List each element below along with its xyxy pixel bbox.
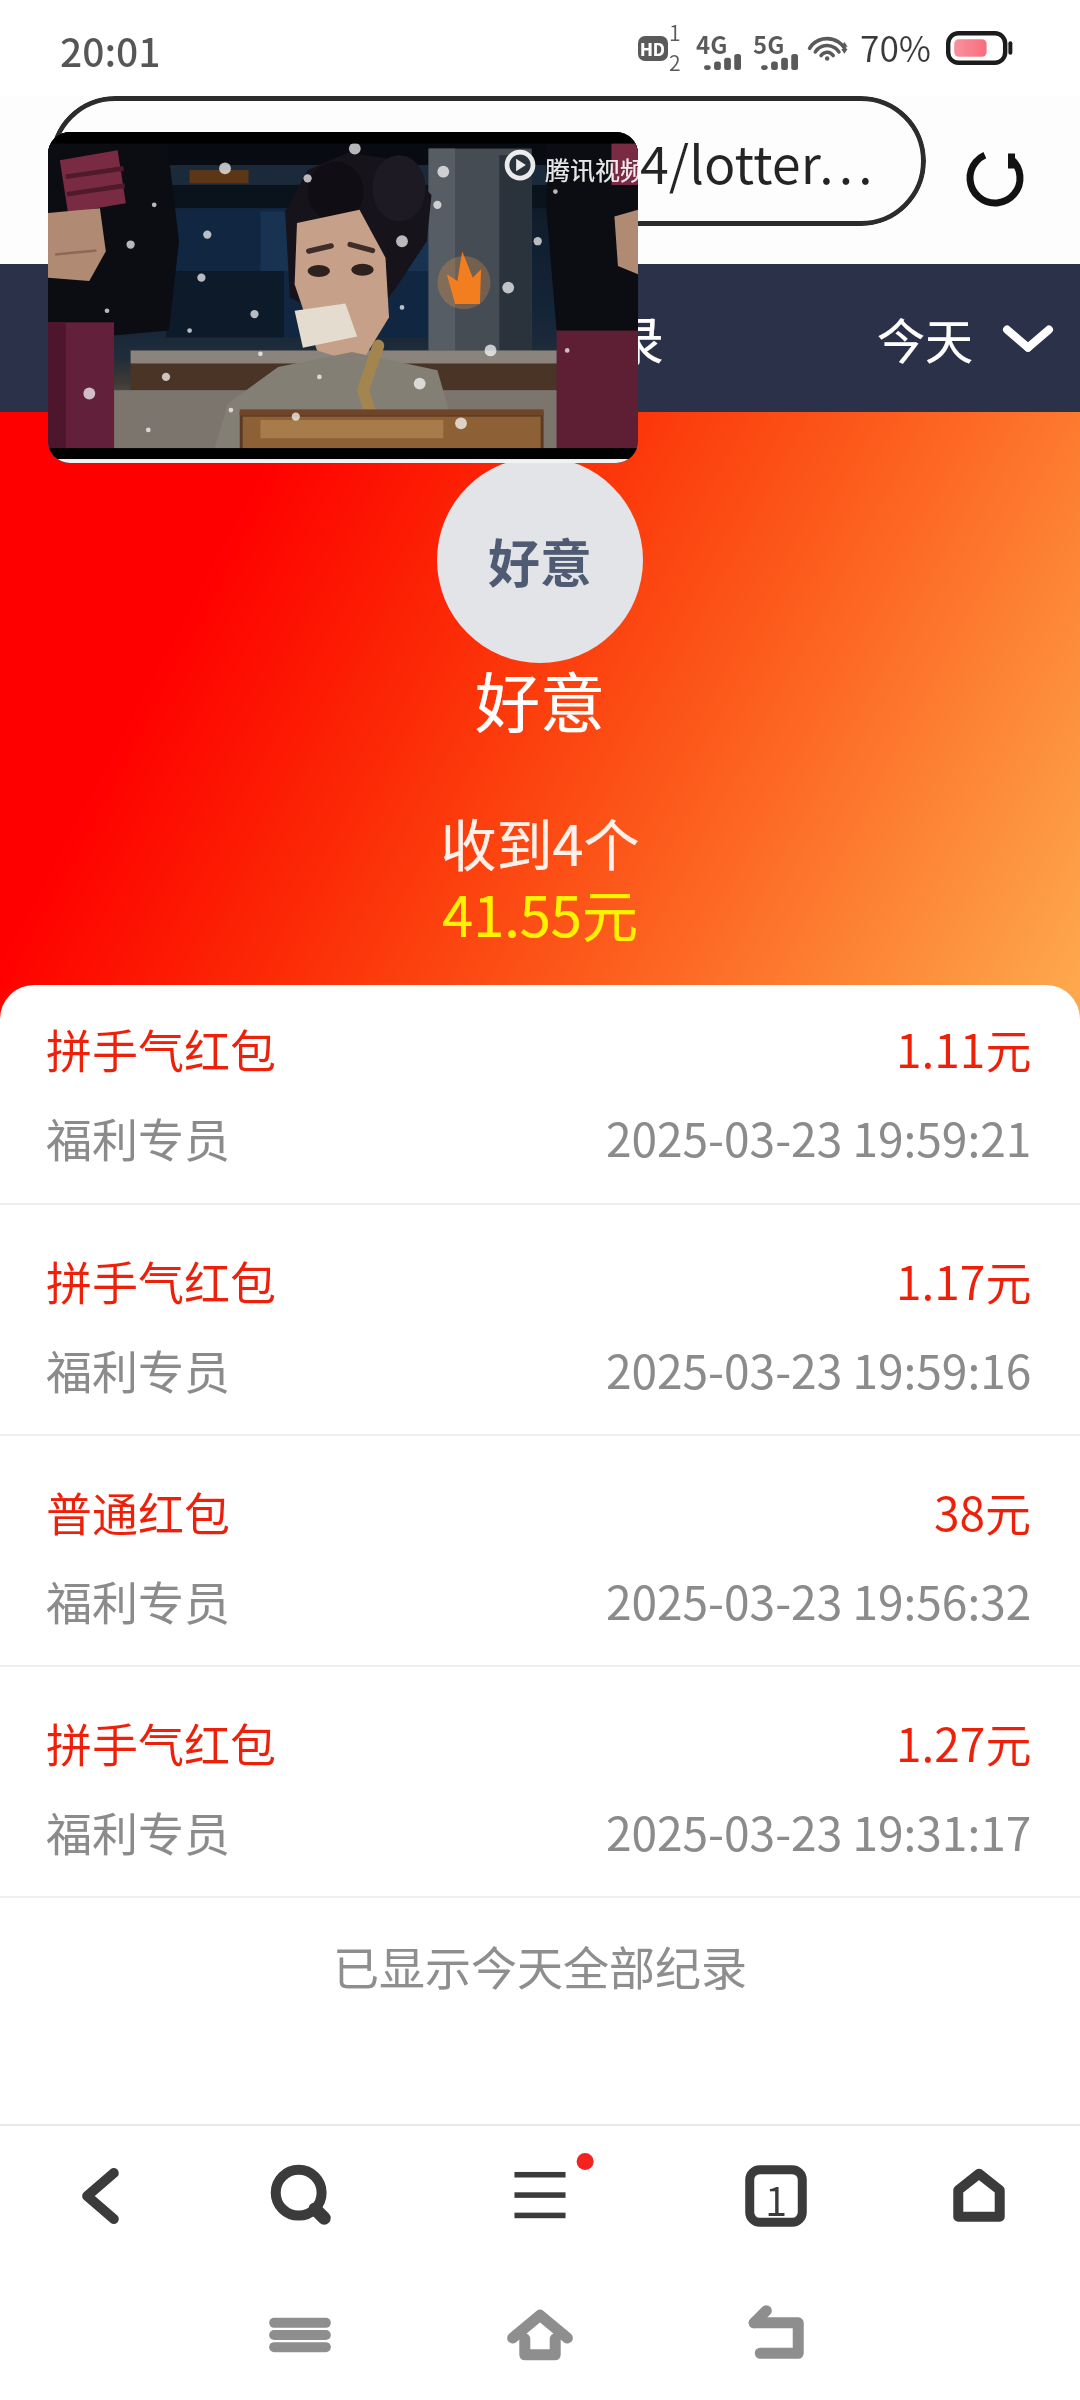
staticText: 2025-03-23 19:56:32 bbox=[606, 1567, 1032, 1634]
staticText: 拼手气红包 bbox=[46, 1015, 276, 1082]
button[interactable]: 普通红包 bbox=[0, 1436, 1080, 1665]
staticText: 红包记录 bbox=[452, 300, 664, 377]
staticText: 2 bbox=[669, 47, 681, 77]
button[interactable]: Menu bbox=[482, 2138, 598, 2254]
staticText: 拼手气红包 bbox=[46, 1709, 276, 1776]
button[interactable]: 4/lotter… bbox=[50, 96, 926, 226]
button[interactable]: Reload bbox=[940, 123, 1050, 233]
button[interactable]: Floating video player bbox=[48, 132, 638, 463]
staticText: 2025-03-23 19:59:16 bbox=[606, 1336, 1032, 1403]
button[interactable]: Search bbox=[244, 2138, 360, 2254]
staticText: 拼手气红包 bbox=[46, 1247, 276, 1314]
staticText: 4G bbox=[696, 26, 728, 61]
staticText: 今天 bbox=[877, 303, 974, 373]
staticText: HD bbox=[640, 36, 666, 61]
staticText: 好意 bbox=[0, 652, 1080, 746]
button[interactable]: Recents bbox=[245, 2280, 355, 2390]
button[interactable]: 好意 bbox=[437, 457, 643, 663]
button[interactable]: Home bbox=[921, 2138, 1037, 2254]
staticText: 1.11元 bbox=[896, 1015, 1032, 1082]
button[interactable]: Back bbox=[41, 2138, 157, 2254]
staticText: 1 bbox=[669, 17, 681, 47]
staticText: 41.55元 bbox=[0, 872, 1080, 953]
staticText: 已显示今天全部纪录 bbox=[0, 1932, 1080, 1999]
staticText: 福利专员 bbox=[46, 1567, 230, 1634]
button[interactable]: 今天 bbox=[865, 285, 1066, 391]
staticText: 收到4个 bbox=[0, 801, 1080, 882]
staticText: 福利专员 bbox=[46, 1798, 230, 1865]
staticText: 福利专员 bbox=[46, 1336, 230, 1403]
button[interactable]: 拼手气红包 bbox=[0, 1205, 1080, 1434]
button[interactable]: 拼手气红包 bbox=[0, 1667, 1080, 1896]
button[interactable]: Tabs bbox=[718, 2138, 834, 2254]
staticText: 1.27元 bbox=[896, 1709, 1032, 1776]
staticText: 1.17元 bbox=[896, 1247, 1032, 1314]
staticText: 4/lotter… bbox=[640, 124, 873, 199]
staticText: 5G bbox=[753, 26, 785, 61]
staticText: 福利专员 bbox=[46, 1104, 230, 1171]
staticText: 2025-03-23 19:59:21 bbox=[606, 1104, 1032, 1171]
staticText: 38元 bbox=[934, 1478, 1032, 1545]
staticText: 1 bbox=[765, 2170, 788, 2228]
button[interactable]: 拼手气红包 bbox=[0, 985, 1080, 1203]
staticText: 2025-03-23 19:31:17 bbox=[606, 1798, 1032, 1865]
staticText: 普通红包 bbox=[46, 1478, 230, 1545]
button[interactable]: Home bbox=[485, 2280, 595, 2390]
staticText: 20:01 bbox=[60, 22, 161, 78]
staticText: 70% bbox=[860, 21, 932, 72]
staticText: 腾讯视频 bbox=[545, 151, 638, 187]
button[interactable]: Back bbox=[725, 2280, 835, 2390]
staticText: 好意 bbox=[488, 523, 593, 598]
